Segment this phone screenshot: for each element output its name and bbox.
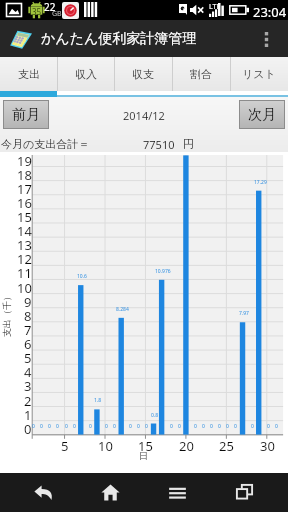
staticText: 0 xyxy=(40,423,43,430)
staticText: 0 xyxy=(251,423,254,430)
staticText: 5 xyxy=(61,437,69,455)
staticText: 14 xyxy=(17,222,32,240)
staticText: 12 xyxy=(17,250,32,268)
staticText: 日 xyxy=(139,450,148,461)
staticText: リスト xyxy=(242,67,276,81)
staticText: GB xyxy=(52,9,62,19)
staticText: 0 xyxy=(65,423,68,430)
staticText: 次月 xyxy=(248,106,276,124)
staticText: 15 xyxy=(138,437,153,455)
button[interactable]: リスト xyxy=(230,57,288,91)
staticText: 0 xyxy=(129,423,132,430)
staticText: 0 xyxy=(178,423,181,430)
button[interactable]: 収支 xyxy=(114,57,172,91)
staticText: 19 xyxy=(17,152,32,170)
button[interactable]: Recent apps xyxy=(211,473,278,512)
staticText: 7.97 xyxy=(239,310,249,317)
staticText: 25 xyxy=(219,437,234,455)
staticText: 0.8 xyxy=(151,412,159,419)
staticText: 4 xyxy=(24,363,32,381)
staticText: 支出 xyxy=(18,67,40,81)
button[interactable]: 割合 xyxy=(172,57,230,91)
button[interactable]: Menu xyxy=(144,473,211,512)
staticText: 0 xyxy=(89,423,92,430)
staticText: 9 xyxy=(24,293,32,311)
staticText: 10 xyxy=(98,437,113,455)
staticText: 2014/12 xyxy=(123,108,165,123)
button[interactable]: Home xyxy=(77,473,144,512)
staticText: 6 xyxy=(24,335,32,353)
staticText: 割合 xyxy=(190,67,212,81)
staticText: 0 xyxy=(210,423,213,430)
staticText: 3 xyxy=(24,377,32,395)
staticText: 5 xyxy=(24,349,32,367)
staticText: 支出（千） xyxy=(1,292,12,337)
staticText: 0 xyxy=(137,423,140,430)
staticText: 0 xyxy=(226,423,229,430)
button[interactable]: 収入 xyxy=(57,57,114,91)
staticText: 1.8 xyxy=(94,397,102,404)
staticText: 11 xyxy=(17,264,32,282)
staticText: 0 xyxy=(202,423,205,430)
button[interactable]: Back xyxy=(10,473,77,512)
staticText: 17 xyxy=(17,180,32,198)
staticText: 0 xyxy=(73,423,76,430)
staticText: 10.6 xyxy=(77,273,87,280)
staticText: 0 xyxy=(48,423,51,430)
staticText: 7 xyxy=(24,321,32,339)
staticText: 収入 xyxy=(75,67,97,81)
staticText: 17.29 xyxy=(254,179,267,186)
staticText: 0 xyxy=(218,423,221,430)
staticText: 0 xyxy=(24,420,32,438)
staticText: 10 xyxy=(17,279,32,297)
staticText: 2 xyxy=(24,392,32,410)
staticText: 0 xyxy=(32,423,35,430)
staticText: 23:04 xyxy=(253,3,287,21)
staticText: 0 xyxy=(105,423,108,430)
staticText: LTE xyxy=(209,2,221,12)
staticText: 35 xyxy=(32,6,42,15)
staticText: 0 xyxy=(275,423,278,430)
staticText: 13 xyxy=(17,236,32,254)
staticText: 収支 xyxy=(132,67,154,81)
staticText: 0 xyxy=(170,423,173,430)
staticText: 今月の支出合計＝ xyxy=(1,137,90,151)
staticText: 0 xyxy=(145,423,148,430)
staticText: 0 xyxy=(56,423,59,430)
staticText: 10.976 xyxy=(155,268,171,275)
staticText: 0 xyxy=(113,423,116,430)
button[interactable]: 次月 xyxy=(240,101,284,128)
staticText: 22 xyxy=(44,0,56,14)
button[interactable]: 支出 xyxy=(0,57,57,91)
staticText: 15 xyxy=(17,208,32,226)
staticText: 前月 xyxy=(12,106,40,124)
staticText: 16 xyxy=(17,194,32,212)
staticText: 8.284 xyxy=(116,306,129,313)
button[interactable]: More options xyxy=(250,23,282,55)
staticText: 18 xyxy=(17,166,32,184)
staticText: かんたん便利家計簿管理 xyxy=(41,30,197,48)
staticText: 20 xyxy=(179,437,194,455)
staticText: 8 xyxy=(24,307,32,325)
staticText: 0 xyxy=(194,423,197,430)
staticText: 円 xyxy=(183,137,194,151)
staticText: 30 xyxy=(260,437,275,455)
staticText: 0 xyxy=(234,423,237,430)
staticText: 0 xyxy=(267,423,270,430)
button[interactable]: 前月 xyxy=(4,101,48,128)
staticText: 1 xyxy=(24,406,32,424)
staticText: 77510 xyxy=(143,137,175,152)
